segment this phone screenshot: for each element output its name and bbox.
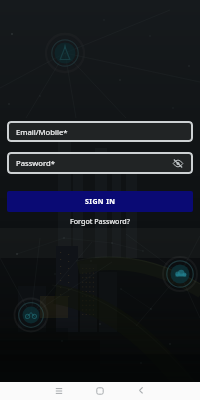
button[interactable]: [45, 382, 73, 400]
staticText: SIGN IN: [85, 197, 116, 207]
button[interactable]: [175, 154, 193, 172]
staticText: Forgot Password?: [70, 216, 130, 226]
button[interactable]: Email/Mobile*: [7, 121, 193, 142]
button[interactable]: [127, 382, 155, 400]
button[interactable]: Password*: [7, 152, 193, 174]
button[interactable]: [86, 382, 114, 400]
button[interactable]: SIGN IN: [7, 191, 193, 212]
staticText: Email/Mobile*: [16, 127, 68, 137]
button[interactable]: Forgot Password?: [70, 216, 130, 226]
staticText: Password*: [16, 158, 56, 168]
